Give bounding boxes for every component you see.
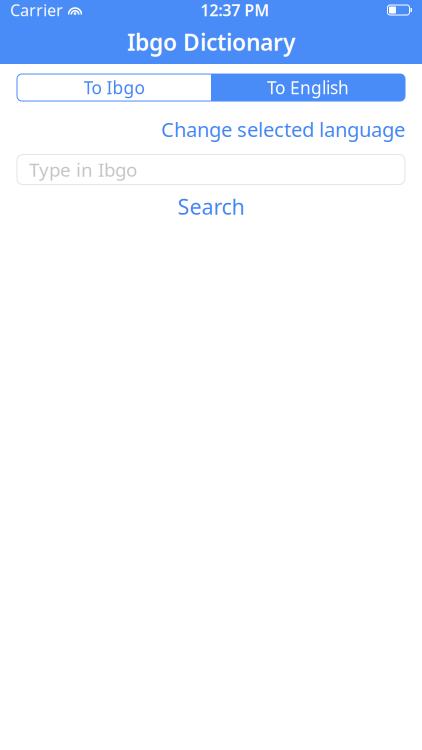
staticText: To English: [267, 76, 349, 99]
button[interactable]: Search: [0, 194, 422, 220]
staticText: 12:37 PM: [200, 0, 269, 21]
staticText: Change selected language: [161, 116, 405, 143]
button[interactable]: Change selected language: [161, 116, 405, 143]
staticText: Type in Ibgo: [29, 157, 137, 182]
staticText: Ibgo Dictionary: [127, 27, 295, 57]
button[interactable]: To English: [211, 74, 405, 101]
staticText: Search: [177, 192, 244, 221]
button[interactable]: To Ibgo: [17, 74, 211, 101]
staticText: To Ibgo: [83, 76, 144, 99]
staticText: Carrier: [10, 0, 63, 21]
